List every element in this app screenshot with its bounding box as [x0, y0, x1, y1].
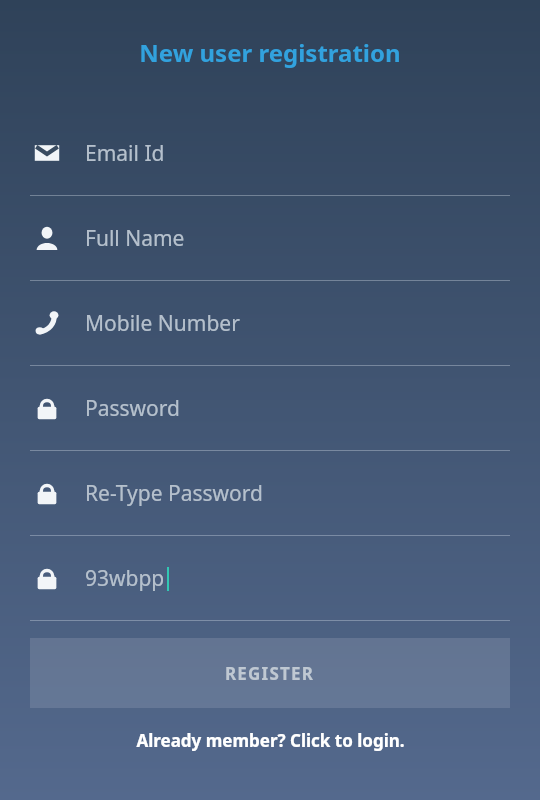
other: Full Name	[30, 221, 64, 255]
other: Email Id	[30, 136, 64, 170]
button[interactable]: Already member? Click to login.	[0, 725, 540, 756]
staticText: REGISTER	[225, 662, 315, 685]
button[interactable]: Email Id	[0, 111, 540, 195]
staticText: Email Id	[85, 139, 165, 168]
staticText: Mobile Number	[85, 309, 240, 338]
staticText: New user registration	[0, 36, 540, 69]
button[interactable]: Re-Type Password	[0, 451, 540, 535]
button[interactable]: Mobile Number	[0, 281, 540, 365]
button[interactable]: Password	[0, 366, 540, 450]
staticText: Password	[85, 394, 180, 423]
staticText: Re-Type Password	[85, 479, 263, 508]
other: Re-Type Password	[30, 476, 64, 510]
button[interactable]: Captcha	[0, 536, 540, 620]
staticText: 93wbpp	[85, 564, 165, 593]
other: Mobile Number	[30, 306, 64, 340]
button[interactable]: Full Name	[0, 196, 540, 280]
staticText: Full Name	[85, 224, 185, 253]
button[interactable]: REGISTER	[30, 638, 510, 708]
other: Captcha	[30, 561, 64, 595]
other: Password	[30, 391, 64, 425]
staticText: Already member? Click to login.	[136, 729, 405, 752]
